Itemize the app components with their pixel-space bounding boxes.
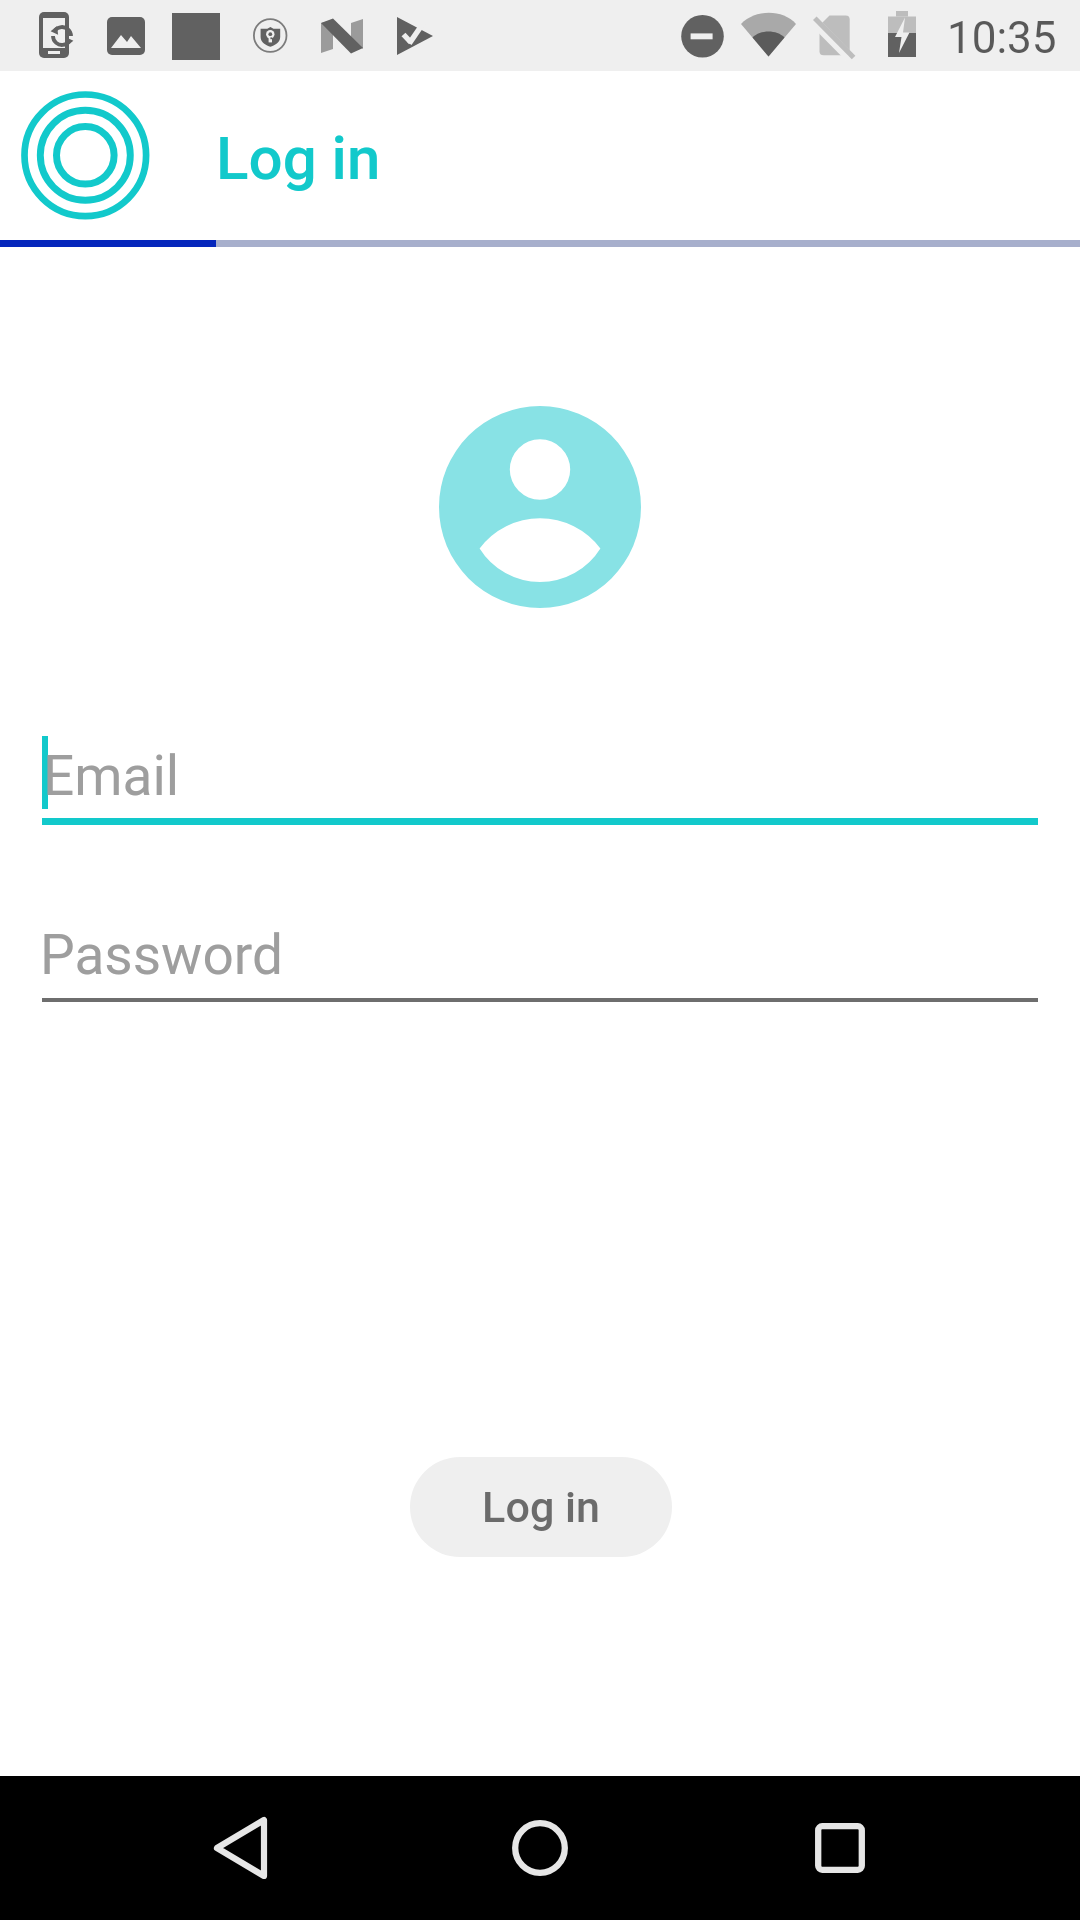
- button[interactable]: Back: [180, 1798, 300, 1898]
- staticText: 10:35: [947, 12, 1057, 64]
- button[interactable]: App logo: [19, 89, 152, 222]
- button[interactable]: Home: [480, 1798, 600, 1898]
- button[interactable]: Log in: [410, 1457, 672, 1557]
- button[interactable]: Recent apps: [780, 1798, 900, 1898]
- staticText: Password: [40, 923, 283, 987]
- staticText: Email: [43, 744, 180, 808]
- button[interactable]: Email: [0, 736, 1080, 825]
- staticText: Log in: [216, 123, 381, 193]
- staticText: Log in: [482, 1482, 600, 1532]
- button[interactable]: Password: [0, 916, 1080, 1002]
